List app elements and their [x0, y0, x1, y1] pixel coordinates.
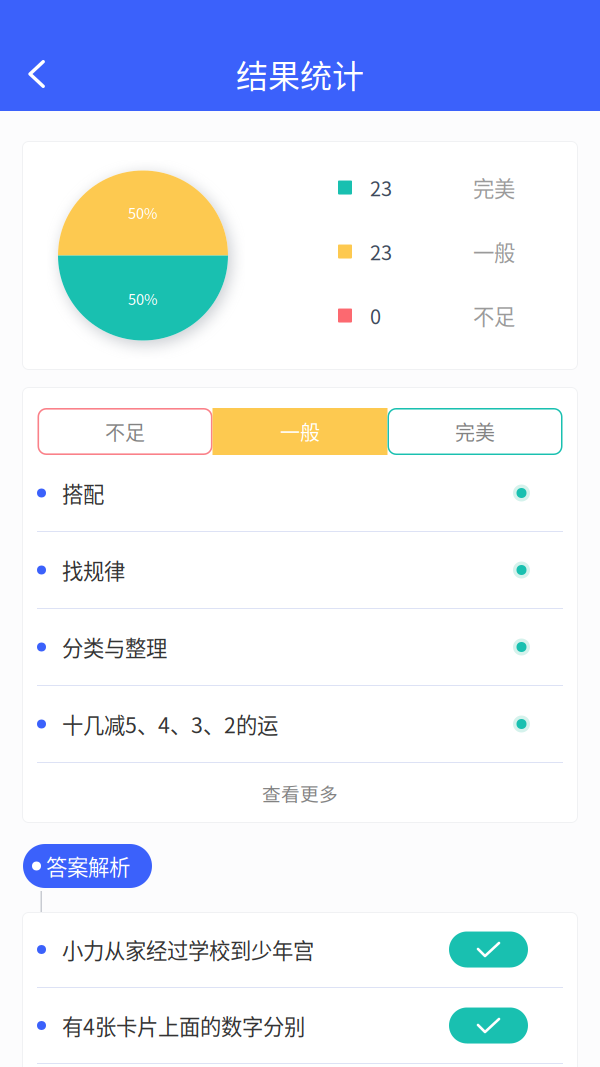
staticText: 50%: [128, 288, 158, 309]
staticText: 23: [370, 173, 392, 202]
staticText: 小力从家经过学校到少年宫: [62, 934, 314, 965]
staticText: 不足: [105, 417, 145, 446]
staticText: 找规律: [62, 555, 125, 585]
staticText: 一般: [473, 236, 515, 267]
button[interactable]: 完美: [387, 408, 562, 455]
staticText: 完美: [473, 172, 515, 203]
staticText: 一般: [280, 417, 320, 446]
button[interactable]: 有4张卡片上面的数字分别: [22, 988, 578, 1063]
staticText: 不足: [473, 300, 515, 331]
button[interactable]: 小力从家经过学校到少年宫: [22, 912, 578, 987]
button[interactable]: 找规律: [22, 532, 578, 608]
staticText: 十几减5、4、3、2的运: [62, 709, 278, 739]
staticText: 23: [370, 237, 392, 266]
button[interactable]: Back: [0, 44, 64, 104]
button[interactable]: 查看更多: [22, 763, 578, 823]
staticText: 0: [370, 301, 381, 330]
button[interactable]: 分类与整理: [22, 609, 578, 685]
button[interactable]: 答案解析: [23, 844, 152, 888]
staticText: 查看更多: [262, 779, 338, 806]
button[interactable]: 搭配: [22, 455, 578, 531]
staticText: 分类与整理: [62, 632, 167, 662]
staticText: 结果统计: [236, 51, 364, 97]
button[interactable]: 不足: [37, 408, 212, 455]
button[interactable]: 十几减5、4、3、2的运: [22, 686, 578, 762]
button[interactable]: 一般: [212, 408, 387, 455]
staticText: 答案解析: [46, 851, 130, 881]
staticText: 有4张卡片上面的数字分别: [62, 1010, 305, 1041]
staticText: 50%: [128, 202, 158, 223]
staticText: 搭配: [62, 478, 104, 508]
staticText: 完美: [455, 417, 495, 446]
